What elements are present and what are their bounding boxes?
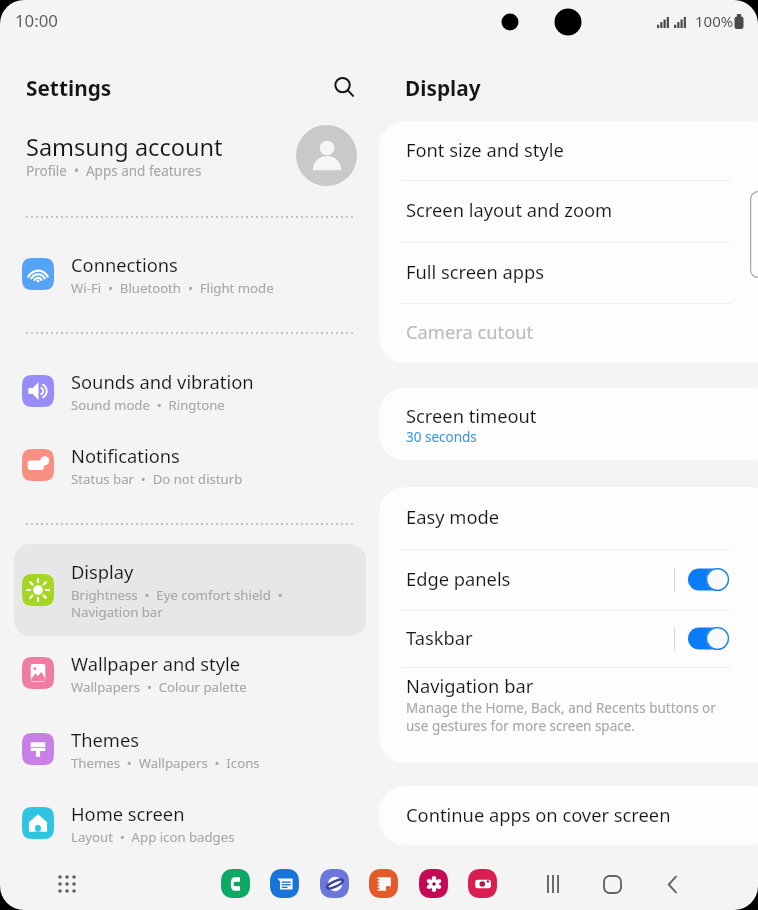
button[interactable]: Taskbar: [688, 627, 729, 650]
button[interactable]: Themes: [14, 714, 366, 784]
button[interactable]: App 6: [468, 869, 497, 898]
staticText: Settings: [26, 74, 112, 102]
button[interactable]: Recents: [533, 864, 573, 904]
staticText: Wallpapers • Colour palette: [71, 678, 247, 696]
button[interactable]: Notifications: [14, 430, 366, 500]
button[interactable]: Wallpaper and style: [14, 638, 366, 708]
staticText: Wi-Fi • Bluetooth • Flight mode: [71, 279, 274, 297]
staticText: Taskbar: [406, 625, 473, 650]
button[interactable]: Full screen apps: [379, 242, 758, 303]
staticText: Connections: [71, 252, 178, 277]
staticText: Navigation bar: [406, 673, 534, 698]
staticText: Wallpaper and style: [71, 651, 241, 676]
button[interactable]: App 4: [369, 869, 398, 898]
staticText: Profile • Apps and features: [26, 162, 202, 180]
button[interactable]: Samsung account: [12, 118, 368, 194]
staticText: 100%: [695, 11, 734, 31]
staticText: Screen layout and zoom: [406, 197, 613, 222]
staticText: Manage the Home, Back, and Recents butto…: [406, 699, 716, 735]
staticText: Themes: [71, 727, 139, 752]
button[interactable]: Edge panels: [379, 549, 758, 610]
staticText: Sounds and vibration: [71, 369, 254, 394]
button[interactable]: Home: [592, 864, 632, 904]
button[interactable]: Camera cutout: [379, 303, 758, 363]
staticText: Camera cutout: [406, 319, 534, 344]
staticText: Continue apps on cover screen: [406, 802, 671, 827]
button[interactable]: Screen timeout: [379, 388, 758, 460]
staticText: Samsung account: [26, 131, 223, 163]
staticText: Screen timeout: [406, 403, 537, 428]
button[interactable]: Home screen: [14, 788, 366, 858]
staticText: Display: [405, 74, 481, 102]
button[interactable]: Font size and style: [379, 121, 758, 180]
button[interactable]: Continue apps on cover screen: [379, 786, 758, 845]
button[interactable]: Connections: [14, 239, 366, 309]
button[interactable]: App 5: [419, 869, 448, 898]
staticText: Display: [71, 559, 134, 584]
staticText: Home screen: [71, 801, 185, 826]
staticText: Sound mode • Ringtone: [71, 396, 225, 414]
staticText: Font size and style: [406, 137, 564, 162]
staticText: Notifications: [71, 443, 180, 468]
button[interactable]: Sounds and vibration: [14, 356, 366, 426]
staticText: 10:00: [15, 9, 58, 32]
button[interactable]: Taskbar: [379, 610, 758, 667]
button[interactable]: Easy mode: [379, 487, 758, 549]
button[interactable]: Search: [325, 68, 363, 106]
button[interactable]: Edge panels: [688, 568, 729, 591]
staticText: Brightness • Eye comfort shield • Naviga…: [71, 586, 283, 621]
staticText: Edge panels: [406, 566, 511, 591]
button[interactable]: Back: [652, 864, 692, 904]
button[interactable]: App 3: [320, 869, 349, 898]
staticText: Status bar • Do not disturb: [71, 470, 243, 488]
button[interactable]: App 1: [221, 869, 250, 898]
staticText: 30 seconds: [406, 428, 477, 446]
staticText: Themes • Wallpapers • Icons: [71, 754, 260, 772]
staticText: Easy mode: [406, 504, 500, 529]
button[interactable]: Navigation bar: [379, 667, 758, 763]
button[interactable]: Screen layout and zoom: [379, 180, 758, 242]
staticText: Layout • App icon badges: [71, 828, 235, 846]
button[interactable]: Display: [14, 544, 366, 636]
button[interactable]: App 2: [270, 869, 299, 898]
staticText: Full screen apps: [406, 259, 544, 284]
button[interactable]: Apps: [51, 868, 83, 900]
